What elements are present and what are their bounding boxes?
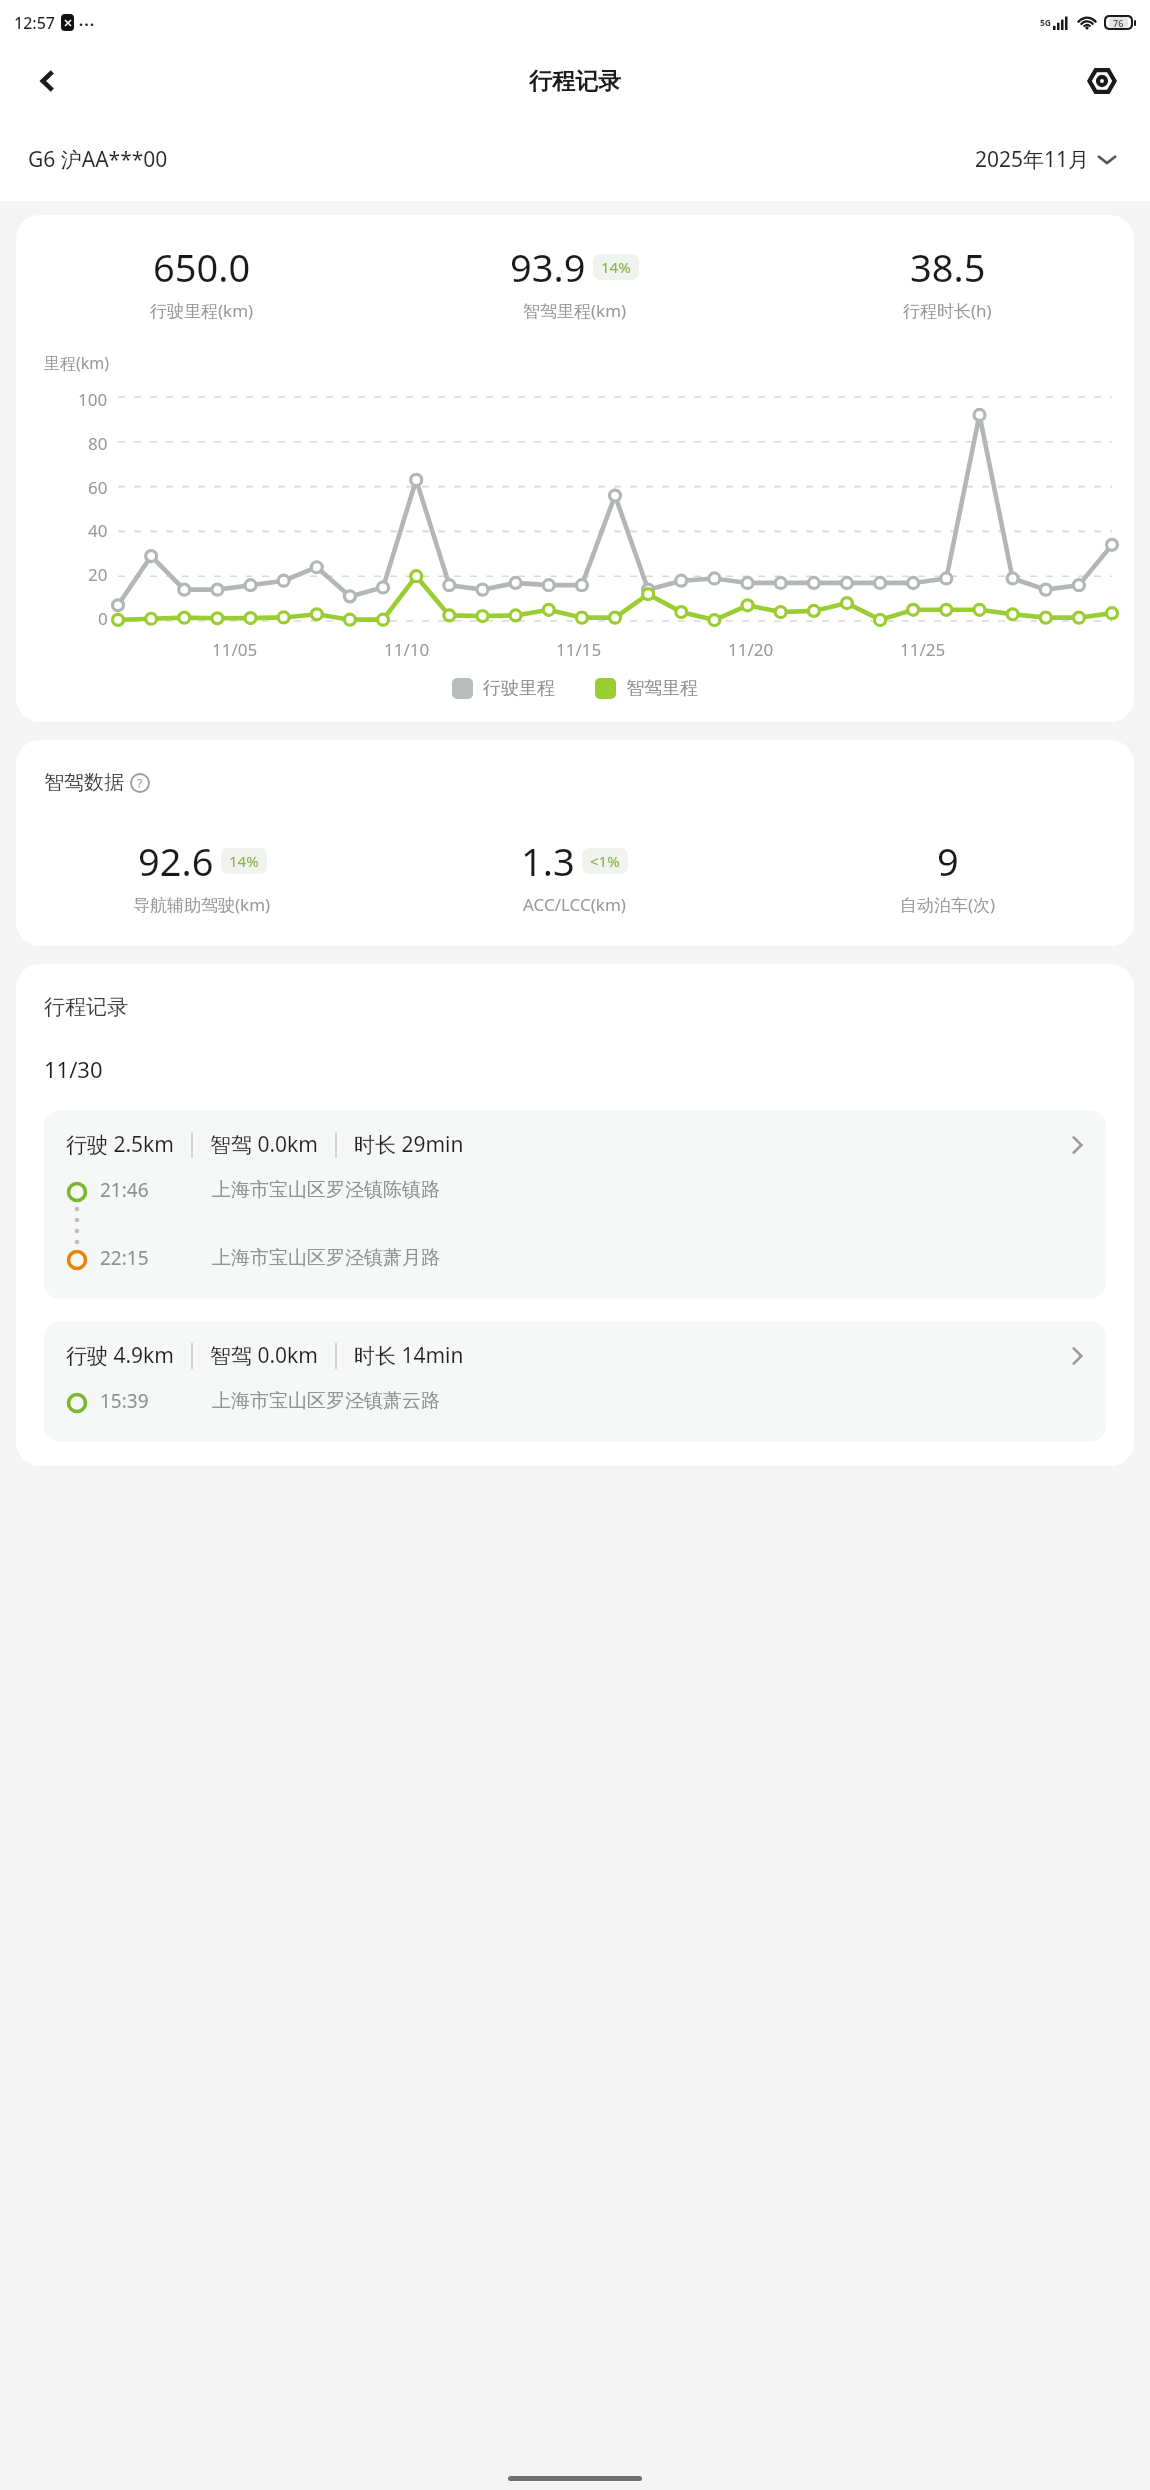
staticText: 11/05 [212, 638, 258, 661]
staticText: 智驾里程 [626, 677, 698, 700]
staticText: 5G [1040, 17, 1052, 29]
staticText: 智驾 0.0km [210, 1341, 318, 1370]
staticText: 智驾 0.0km [210, 1130, 318, 1159]
staticText: 时长 14min [354, 1341, 464, 1370]
staticText: 11/25 [900, 638, 946, 661]
staticText: 行驶 4.9km [66, 1341, 174, 1370]
staticText: 时长 29min [354, 1130, 464, 1159]
staticText: 60 [88, 476, 108, 499]
staticText: 上海市宝山区罗泾镇陈镇路 [212, 1178, 440, 1202]
staticText: 行驶里程 [483, 677, 555, 700]
staticText: 11/15 [556, 638, 602, 661]
staticText: ACC/LCC(km) [523, 893, 626, 916]
button[interactable]: 2025年11月 [969, 139, 1122, 180]
button[interactable]: 行驶 4.9km [44, 1321, 1106, 1442]
staticText: 38.5 [910, 241, 986, 293]
staticText: 行程记录 [529, 67, 621, 96]
staticText: ? [137, 775, 143, 791]
staticText: 21:46 [100, 1177, 149, 1203]
staticText: 100 [78, 388, 108, 411]
staticText: 11/20 [728, 638, 774, 661]
staticText: 20 [88, 563, 108, 586]
staticText: 11/30 [44, 1054, 103, 1084]
button[interactable]: Settings [1074, 53, 1130, 109]
staticText: 导航辅助驾驶(km) [133, 893, 271, 916]
staticText: 0 [98, 607, 108, 630]
staticText: 2025年11月 [975, 145, 1090, 174]
staticText: 14% [229, 851, 259, 871]
staticText: 智驾数据 [44, 770, 124, 795]
staticText: 行驶 2.5km [66, 1130, 174, 1159]
button[interactable]: 行驶 2.5km [44, 1110, 1106, 1299]
staticText: 80 [88, 432, 108, 455]
button[interactable]: 智驾数据 [44, 770, 170, 795]
staticText: 1.3 [521, 835, 575, 887]
staticText: 自动泊车(次) [900, 893, 996, 916]
staticText: 93.9 [510, 241, 586, 293]
staticText: 650.0 [153, 241, 251, 293]
staticText: 12:57 [14, 12, 55, 34]
staticText: 行驶里程(km) [150, 299, 254, 322]
staticText: 智驾里程(km) [523, 299, 627, 322]
staticText: 行程记录 [44, 994, 128, 1020]
staticText: 15:39 [100, 1388, 149, 1414]
staticText: 76 [1113, 17, 1124, 28]
staticText: 40 [88, 519, 108, 542]
staticText: 22:15 [100, 1245, 149, 1271]
staticText: 行程时长(h) [903, 299, 992, 322]
staticText: G6 沪AA***00 [28, 145, 168, 174]
staticText: 11/10 [384, 638, 430, 661]
staticText: 14% [601, 257, 631, 277]
button[interactable]: Back [20, 53, 76, 109]
staticText: 里程(km) [44, 352, 110, 374]
staticText: 9 [937, 835, 959, 887]
staticText: 92.6 [138, 835, 214, 887]
staticText: 上海市宝山区罗泾镇萧月路 [212, 1246, 440, 1270]
staticText: <1% [590, 851, 620, 871]
staticText: 上海市宝山区罗泾镇萧云路 [212, 1389, 440, 1413]
